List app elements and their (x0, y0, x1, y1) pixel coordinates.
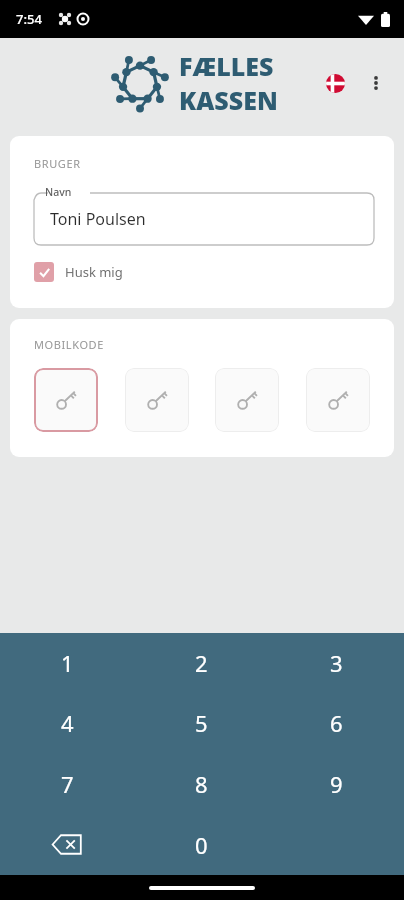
button[interactable]: Husk mig (34, 262, 123, 282)
staticText: 3 (330, 648, 343, 678)
button[interactable]: 2 (134, 633, 269, 693)
staticText: 4 (61, 708, 74, 738)
button[interactable]: 8 (134, 753, 269, 814)
button[interactable]: 9 (269, 753, 404, 814)
button[interactable]: 1 (0, 633, 134, 693)
staticText: MOBILKODE (34, 337, 104, 352)
staticText: 6 (330, 708, 343, 738)
staticText: Navn (45, 185, 72, 199)
button[interactable]: Code digit (306, 368, 370, 432)
staticText: 9 (330, 769, 343, 799)
staticText: 5 (195, 708, 208, 738)
staticText: FÆLLES (179, 49, 274, 83)
button[interactable]: 7 (0, 753, 134, 814)
button[interactable]: 0 (134, 814, 269, 875)
button[interactable]: Code digit (125, 368, 189, 432)
button[interactable]: 4 (0, 693, 134, 753)
button[interactable]: Code digit (34, 368, 98, 432)
staticText: 7 (61, 769, 74, 799)
button[interactable]: Language: Danish (318, 66, 352, 100)
staticText: BRUGER (34, 156, 81, 171)
staticText: 2 (195, 648, 208, 678)
staticText: Husk mig (65, 263, 123, 281)
staticText: KASSEN (179, 83, 278, 117)
staticText: 1 (61, 648, 74, 678)
button[interactable]: Backspace (0, 814, 134, 875)
button[interactable]: 6 (269, 693, 404, 753)
staticText: 0 (195, 830, 208, 860)
staticText: 8 (195, 769, 208, 799)
button[interactable]: More options (356, 63, 396, 103)
staticText: Toni Poulsen (50, 208, 146, 230)
staticText: 7:54 (16, 10, 42, 28)
button[interactable]: Code digit (215, 368, 279, 432)
button[interactable]: 3 (269, 633, 404, 693)
button[interactable]: 5 (134, 693, 269, 753)
